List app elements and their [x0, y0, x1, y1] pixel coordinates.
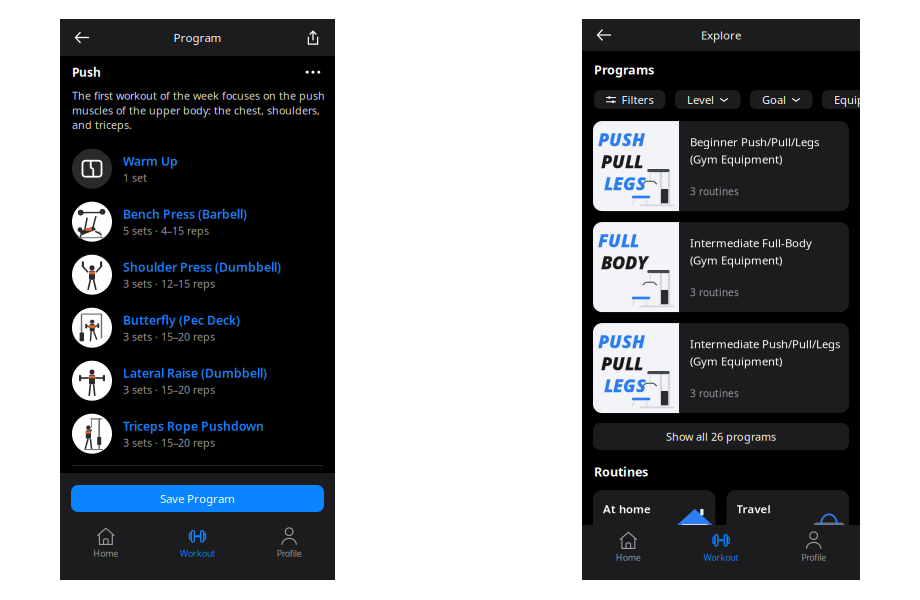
button[interactable]: Triceps Rope Pushdown [60, 407, 335, 460]
button[interactable]: Share [297, 19, 329, 56]
staticText: Show all 26 programs [666, 429, 776, 444]
staticText: PULL [601, 351, 643, 376]
staticText: 1 set [123, 170, 147, 185]
staticText: Workout [703, 551, 738, 563]
button[interactable]: Shoulder Press (Dumbbell) [60, 248, 335, 301]
staticText: 3 routines [690, 184, 739, 198]
staticText: Save Program [160, 491, 235, 506]
staticText: 3 routines [690, 386, 739, 400]
button[interactable]: Workout [675, 530, 767, 564]
button[interactable]: Bench Press (Barbell) [60, 195, 335, 248]
staticText: Home [93, 547, 118, 559]
button[interactable]: Filters [594, 90, 665, 109]
staticText: Shoulder Press (Dumbbell) [123, 259, 281, 275]
button[interactable]: Home [60, 526, 152, 560]
button[interactable]: Level [675, 90, 740, 109]
staticText: Bench Press (Barbell) [123, 206, 247, 222]
staticText: BODY [601, 250, 648, 275]
staticText: Home [616, 551, 641, 563]
staticText: 3 sets · 15–20 reps [123, 435, 215, 450]
button[interactable]: Home [582, 530, 675, 564]
staticText: LEGS [604, 373, 646, 398]
button[interactable]: Warm Up [60, 142, 335, 195]
staticText: Warm Up [123, 153, 178, 169]
button[interactable]: Profile [767, 530, 860, 564]
staticText: Programs [594, 61, 654, 78]
staticText: LEGS [604, 171, 646, 196]
staticText: 3 sets · 12–15 reps [123, 276, 215, 291]
staticText: Equipment [834, 92, 891, 107]
staticText: The first workout of the week focuses on… [72, 88, 325, 132]
button[interactable]: PUSH [593, 121, 849, 211]
staticText: Workout [180, 547, 215, 559]
button[interactable]: Show all 26 programs [593, 423, 849, 450]
staticText: Explore [701, 27, 741, 43]
staticText: Intermediate Full-Body [690, 235, 812, 250]
staticText: Beginner Push/Pull/Legs [690, 134, 819, 149]
staticText: Program [173, 30, 221, 45]
button[interactable]: FULL [593, 222, 849, 312]
staticText: Routines [594, 463, 648, 480]
staticText: Intermediate Push/Pull/Legs [690, 336, 840, 351]
staticText: PUSH [598, 127, 645, 152]
button[interactable]: Equipment [822, 90, 917, 109]
staticText: FULL [598, 228, 639, 253]
staticText: PULL [601, 149, 643, 174]
staticText: 5 sets · 4–15 reps [123, 223, 209, 238]
staticText: 3 sets · 15–20 reps [123, 329, 215, 344]
staticText: Profile [801, 551, 826, 563]
staticText: Lateral Raise (Dumbbell) [123, 365, 267, 381]
staticText: Push [72, 64, 101, 80]
button[interactable]: Butterfly (Pec Deck) [60, 301, 335, 354]
button[interactable]: At home [593, 490, 715, 548]
staticText: Goal [762, 92, 786, 107]
button[interactable]: Workout [152, 526, 243, 560]
button[interactable]: Profile [243, 526, 335, 560]
button[interactable]: Save Program [71, 485, 324, 512]
button[interactable]: Lateral Raise (Dumbbell) [60, 354, 335, 407]
staticText: (Gym Equipment) [690, 252, 782, 268]
button[interactable]: Goal [750, 90, 812, 109]
staticText: Triceps Rope Pushdown [123, 418, 264, 434]
staticText: Butterfly (Pec Deck) [123, 312, 240, 328]
staticText: Profile [277, 547, 302, 559]
button[interactable]: Back [66, 19, 98, 56]
staticText: At home [603, 501, 651, 516]
button[interactable]: PUSH [593, 323, 849, 413]
staticText: 3 sets · 15–20 reps [123, 382, 215, 397]
staticText: (Gym Equipment) [690, 353, 782, 369]
staticText: (Gym Equipment) [690, 151, 782, 167]
button[interactable]: Travel [726, 490, 849, 548]
staticText: Filters [621, 92, 653, 107]
staticText: Level [687, 92, 714, 107]
button[interactable]: More options [302, 64, 324, 80]
button[interactable]: Back [588, 19, 620, 51]
staticText: PUSH [598, 329, 645, 354]
staticText: 3 routines [690, 285, 739, 299]
staticText: Travel [736, 501, 770, 516]
